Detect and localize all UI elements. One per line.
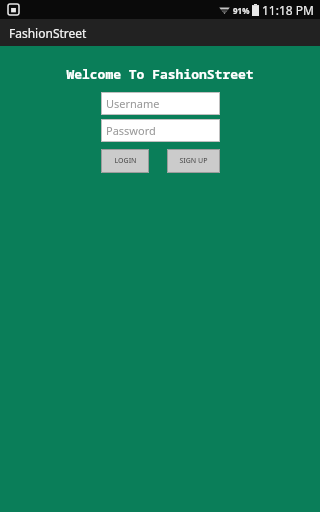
button[interactable]: Password: [101, 119, 220, 142]
staticText: Password: [106, 123, 156, 138]
staticText: Username: [106, 96, 160, 111]
button[interactable]: SIGN UP: [167, 149, 220, 173]
staticText: FashionStreet: [9, 25, 87, 41]
staticText: 11:18 PM: [262, 2, 314, 18]
staticText: Welcome To FashionStreet: [66, 65, 254, 83]
button[interactable]: LOGIN: [101, 149, 149, 173]
button[interactable]: Username: [101, 92, 220, 115]
staticText: SIGN UP: [179, 156, 208, 166]
staticText: LOGIN: [114, 156, 137, 166]
staticText: 91%: [233, 5, 250, 16]
